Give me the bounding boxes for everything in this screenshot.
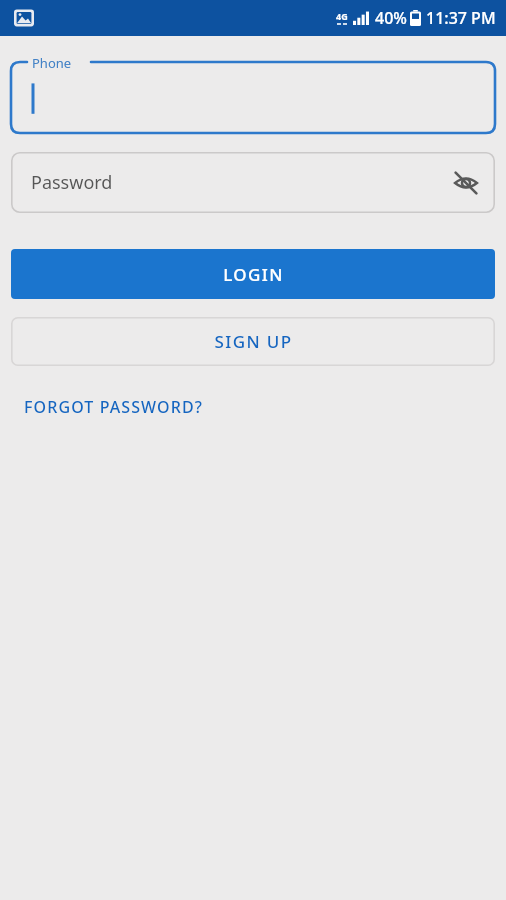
- button[interactable]: FORGOT PASSWORD?: [13, 389, 214, 425]
- staticText: 4G: [336, 10, 348, 22]
- staticText: Phone: [32, 54, 72, 72]
- staticText: 40%: [375, 7, 407, 29]
- staticText: LOGIN: [223, 263, 284, 286]
- button[interactable]: Phone: [11, 53, 495, 133]
- button[interactable]: LOGIN: [11, 249, 495, 299]
- staticText: Password: [31, 170, 113, 195]
- button[interactable]: Show password: [449, 166, 483, 200]
- staticText: FORGOT PASSWORD?: [24, 396, 203, 418]
- staticText: SIGN UP: [214, 330, 293, 353]
- button[interactable]: Password: [11, 152, 495, 213]
- button[interactable]: SIGN UP: [11, 317, 495, 366]
- staticText: 11:37 PM: [426, 7, 496, 29]
